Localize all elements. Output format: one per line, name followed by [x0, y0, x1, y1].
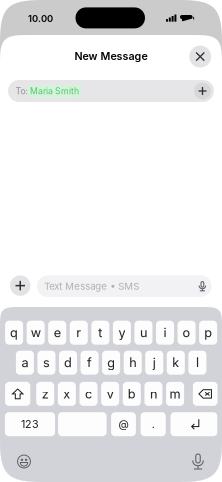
- button[interactable]: z: [36, 382, 54, 406]
- staticText: a: [21, 355, 28, 370]
- button[interactable]: e: [48, 321, 66, 345]
- staticText: i: [163, 325, 166, 340]
- button[interactable]: y: [113, 321, 131, 345]
- button[interactable]: c: [79, 382, 97, 406]
- staticText: x: [63, 386, 70, 401]
- button[interactable]: Shift: [5, 382, 30, 406]
- staticText: n: [150, 386, 157, 401]
- staticText: Text Message • SMS: [44, 280, 139, 292]
- staticText: m: [170, 386, 181, 401]
- button[interactable]: 123: [5, 412, 55, 436]
- button[interactable]: s: [37, 351, 55, 375]
- staticText: p: [204, 325, 212, 340]
- button[interactable]: n: [144, 382, 162, 406]
- staticText: q: [10, 325, 18, 340]
- button[interactable]: u: [134, 321, 152, 345]
- staticText: s: [43, 355, 50, 370]
- button[interactable]: .: [141, 412, 166, 436]
- staticText: c: [85, 386, 92, 401]
- button[interactable]: Add attachment: [10, 275, 30, 296]
- button[interactable]: h: [124, 351, 142, 375]
- button[interactable]: a: [16, 351, 34, 375]
- staticText: 10.00: [28, 13, 53, 24]
- button[interactable]: p: [199, 321, 217, 345]
- staticText: g: [107, 355, 115, 370]
- button[interactable]: d: [59, 351, 77, 375]
- staticText: j: [153, 355, 156, 370]
- button[interactable]: Add contact: [194, 82, 211, 99]
- button[interactable]: r: [70, 321, 88, 345]
- staticText: o: [183, 325, 191, 340]
- staticText: y: [118, 325, 125, 340]
- staticText: w: [31, 325, 41, 340]
- staticText: @: [118, 418, 128, 431]
- staticText: Maria Smith: [30, 86, 79, 96]
- staticText: .: [152, 418, 155, 431]
- button[interactable]: f: [81, 351, 99, 375]
- staticText: h: [129, 355, 136, 370]
- staticText: k: [172, 355, 179, 370]
- staticText: l: [196, 355, 199, 370]
- staticText: d: [64, 355, 72, 370]
- staticText: New Message: [74, 49, 147, 62]
- button[interactable]: o: [178, 321, 196, 345]
- staticText: v: [107, 386, 114, 401]
- staticText: t: [98, 325, 102, 340]
- button[interactable]: Close: [189, 46, 211, 68]
- button[interactable]: m: [166, 382, 184, 406]
- button[interactable]: x: [58, 382, 76, 406]
- staticText: 123: [21, 418, 39, 431]
- button[interactable]: Delete: [193, 382, 217, 406]
- button[interactable]: b: [123, 382, 141, 406]
- button[interactable]: Return: [170, 412, 217, 436]
- button[interactable]: g: [102, 351, 120, 375]
- button[interactable]: i: [156, 321, 174, 345]
- button[interactable]: v: [101, 382, 119, 406]
- button[interactable]: Emoji keyboard: [11, 448, 37, 474]
- button[interactable]: q: [5, 321, 23, 345]
- staticText: r: [76, 325, 81, 340]
- button[interactable]: t: [91, 321, 109, 345]
- staticText: e: [54, 325, 61, 340]
- button[interactable]: w: [27, 321, 45, 345]
- button[interactable]: j: [145, 351, 163, 375]
- staticText: f: [87, 355, 92, 370]
- staticText: b: [128, 386, 136, 401]
- button[interactable]: k: [167, 351, 185, 375]
- button[interactable]: l: [188, 351, 206, 375]
- button[interactable]: @: [111, 412, 136, 436]
- button[interactable]: Dictation: [185, 448, 211, 474]
- staticText: z: [42, 386, 49, 401]
- button[interactable]: [58, 412, 107, 436]
- staticText: To:: [15, 86, 27, 96]
- staticText: u: [140, 325, 147, 340]
